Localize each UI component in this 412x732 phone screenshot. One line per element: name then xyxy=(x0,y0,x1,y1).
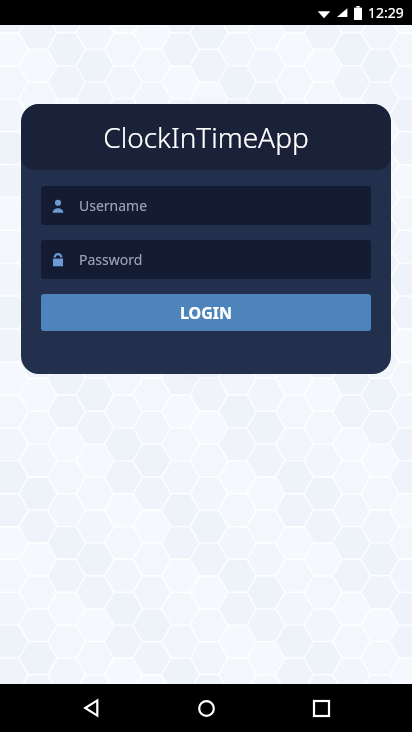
button[interactable]: LOGIN xyxy=(41,294,371,331)
button[interactable]: Username xyxy=(41,186,371,225)
staticText: Username xyxy=(79,196,148,215)
staticText: Password xyxy=(79,250,143,269)
staticText: ClockInTimeApp xyxy=(103,118,309,156)
button[interactable]: Back xyxy=(67,684,115,732)
staticText: 12:29 xyxy=(368,3,404,22)
button[interactable]: Password xyxy=(41,240,371,279)
button[interactable]: Recent apps xyxy=(297,684,345,732)
staticText: LOGIN xyxy=(180,302,233,324)
button[interactable]: Home xyxy=(182,684,230,732)
